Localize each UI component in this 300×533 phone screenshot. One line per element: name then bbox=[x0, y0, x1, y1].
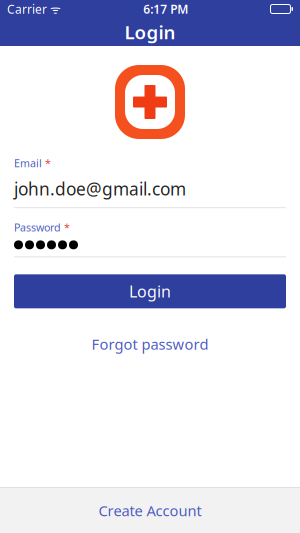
staticText: 6:17 PM bbox=[143, 1, 188, 17]
button[interactable]: Login bbox=[14, 274, 286, 308]
staticText: Email bbox=[14, 156, 42, 170]
staticText: Create Account bbox=[98, 501, 201, 520]
staticText: * bbox=[64, 220, 70, 234]
staticText: ᯤ bbox=[47, 1, 61, 17]
staticText: Carrier bbox=[7, 1, 47, 17]
staticText: Forgot password bbox=[91, 334, 208, 354]
staticText: Password bbox=[14, 220, 61, 234]
button[interactable]: Create Account bbox=[0, 488, 300, 533]
staticText: john.doe@gmail.com bbox=[14, 177, 186, 200]
staticText: * bbox=[45, 156, 51, 170]
staticText: Login bbox=[124, 20, 175, 44]
staticText: Login bbox=[129, 281, 171, 302]
button[interactable]: Forgot password bbox=[14, 326, 286, 362]
